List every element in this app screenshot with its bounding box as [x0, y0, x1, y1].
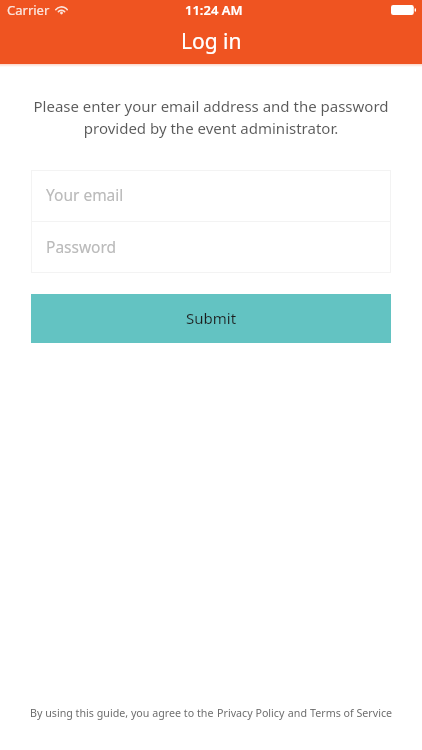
- button[interactable]: Submit: [31, 294, 391, 343]
- staticText: Submit: [186, 308, 237, 328]
- other: Battery full: [391, 5, 416, 15]
- staticText: By using this guide, you agree to the: [30, 706, 217, 721]
- button[interactable]: Your email: [31, 170, 391, 221]
- other: Wi-Fi signal: [55, 5, 68, 15]
- button[interactable]: Password: [31, 222, 391, 273]
- staticText: Carrier: [7, 1, 50, 19]
- staticText: and: [285, 706, 310, 721]
- staticText: Please enter your email address and the …: [32, 96, 390, 139]
- staticText: Password: [46, 236, 117, 257]
- button[interactable]: Terms of Service: [310, 706, 393, 721]
- staticText: Your email: [46, 184, 124, 205]
- staticText: Log in: [181, 27, 242, 56]
- staticText: 11:24 AM: [185, 1, 243, 19]
- button[interactable]: Privacy Policy: [217, 706, 285, 721]
